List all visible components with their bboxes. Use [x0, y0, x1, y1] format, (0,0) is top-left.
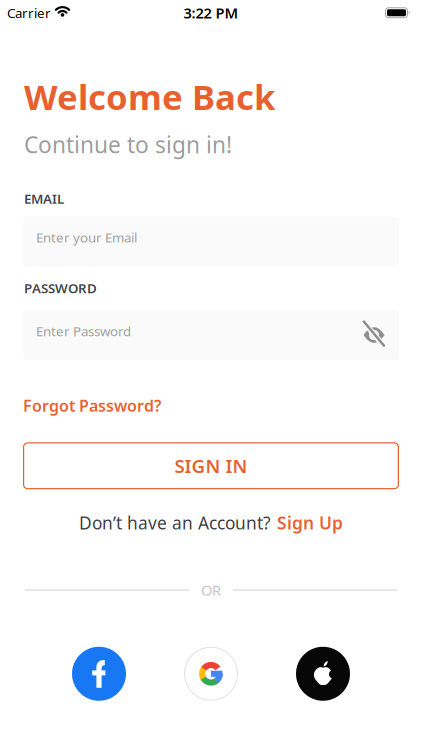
staticText: Forgot Password? — [23, 395, 161, 416]
staticText: Don’t have an Account? — [79, 511, 271, 534]
button[interactable] — [184, 647, 238, 701]
staticText: Welcome Back — [24, 73, 275, 119]
button[interactable]: SIGN IN — [23, 442, 399, 489]
staticText: 3:22 PM — [183, 3, 238, 22]
staticText: Continue to sign in! — [24, 129, 232, 160]
button[interactable] — [72, 647, 126, 701]
staticText: Enter Password — [36, 322, 131, 340]
staticText: EMAIL — [24, 190, 64, 207]
staticText: OR — [201, 580, 221, 600]
button[interactable]: Sign Up — [277, 511, 343, 534]
button[interactable] — [296, 647, 350, 701]
staticText: Carrier — [7, 4, 51, 22]
staticText: Enter your Email — [36, 228, 137, 246]
staticText: PASSWORD — [24, 279, 97, 297]
staticText: Sign Up — [277, 511, 343, 534]
button[interactable] — [362, 325, 386, 345]
staticText: SIGN IN — [174, 453, 247, 478]
button[interactable]: Forgot Password? — [23, 395, 161, 416]
